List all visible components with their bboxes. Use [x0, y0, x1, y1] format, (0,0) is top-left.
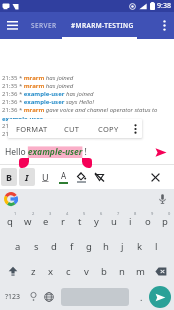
- staticText: v: [84, 265, 89, 278]
- button[interactable]: Send message: [151, 142, 171, 162]
- button[interactable]: r: [54, 209, 71, 234]
- staticText: U: [42, 171, 49, 183]
- staticText: l: [155, 240, 158, 253]
- staticText: w: [24, 215, 32, 228]
- button[interactable]: Bold: [1, 168, 17, 186]
- button[interactable]: COPY: [88, 119, 129, 138]
- button[interactable]: p: [156, 209, 173, 234]
- staticText: 21:36 * example-user has joined: [2, 90, 94, 98]
- staticText: s: [34, 240, 39, 253]
- staticText: z: [31, 265, 36, 278]
- button[interactable]: SERVER: [24, 12, 64, 39]
- button[interactable]: l: [148, 234, 165, 259]
- staticText: ?123: [5, 292, 21, 302]
- button[interactable]: j: [114, 234, 131, 259]
- button[interactable]: #MRARM-TESTING: [64, 12, 141, 39]
- staticText: 5: [83, 211, 86, 216]
- button[interactable]: Fill color: [73, 168, 89, 186]
- button[interactable]: t: [71, 209, 88, 234]
- staticText: e: [43, 215, 49, 228]
- staticText: o: [145, 215, 151, 228]
- button[interactable]: More options: [129, 119, 142, 138]
- staticText: Hello example-user !: [5, 146, 87, 158]
- button[interactable]: Underline: [37, 168, 53, 186]
- staticText: u: [111, 215, 117, 228]
- staticText: t: [78, 215, 82, 228]
- staticText: m: [136, 265, 145, 278]
- button[interactable]: Selection end handle: [82, 158, 92, 168]
- button[interactable]: b: [95, 259, 113, 283]
- staticText: c: [66, 265, 71, 278]
- staticText: f: [70, 240, 74, 253]
- button[interactable]: Selection start handle: [19, 158, 29, 168]
- button[interactable]: o: [139, 209, 156, 234]
- staticText: k: [137, 240, 143, 253]
- button[interactable]: s: [27, 234, 45, 259]
- button[interactable]: Change keyboard language: [41, 283, 57, 310]
- button[interactable]: h: [97, 234, 114, 259]
- button[interactable]: e: [37, 209, 54, 234]
- staticText: d: [51, 240, 57, 253]
- button[interactable]: f: [63, 234, 80, 259]
- button[interactable]: More options: [154, 12, 174, 39]
- button[interactable]: w: [19, 209, 37, 234]
- button[interactable]: CUT: [56, 119, 88, 138]
- staticText: a: [15, 240, 21, 253]
- button[interactable]: Emoji: [25, 283, 41, 310]
- staticText: SERVER: [31, 21, 57, 30]
- staticText: 21:36 * example-user says something: [2, 122, 108, 130]
- staticText: FORMAT: [16, 124, 48, 134]
- button[interactable]: m: [131, 259, 149, 283]
- button[interactable]: d: [45, 234, 63, 259]
- staticText: 9: [151, 211, 154, 216]
- button[interactable]: Clear formatting: [91, 168, 107, 186]
- staticText: A: [61, 170, 67, 181]
- button[interactable]: a: [9, 234, 27, 259]
- button[interactable]: v: [77, 259, 95, 283]
- staticText: 21:35 * mrarm has joined: [2, 82, 74, 90]
- staticText: COPY: [98, 124, 119, 134]
- button[interactable]: z: [25, 259, 42, 283]
- button[interactable]: FORMAT: [8, 119, 56, 138]
- button[interactable]: Voice input: [155, 192, 169, 206]
- button[interactable]: q: [1, 209, 19, 234]
- staticText: 0: [168, 211, 171, 216]
- staticText: 21:36 * example-user says Hello!: [2, 98, 95, 106]
- button[interactable]: u: [105, 209, 122, 234]
- staticText: g: [86, 240, 92, 253]
- staticText: .: [140, 291, 143, 303]
- staticText: 2: [32, 211, 35, 216]
- button[interactable]: y: [88, 209, 105, 234]
- button[interactable]: Backspace: [149, 259, 173, 283]
- button[interactable]: g: [80, 234, 97, 259]
- staticText: CUT: [64, 124, 80, 134]
- button[interactable]: k: [131, 234, 148, 259]
- staticText: h: [103, 240, 109, 253]
- button[interactable]: .: [133, 283, 149, 310]
- staticText: n: [119, 265, 125, 278]
- staticText: #MRARM-TESTING: [71, 21, 134, 30]
- staticText: q: [7, 215, 13, 228]
- button[interactable]: ?123: [1, 283, 25, 310]
- button[interactable]: Google search: [4, 192, 18, 206]
- button[interactable]: i: [122, 209, 139, 234]
- staticText: i: [129, 215, 132, 228]
- button[interactable]: Italic: [19, 168, 35, 186]
- button[interactable]: Shift: [1, 259, 25, 283]
- staticText: I: [25, 171, 29, 183]
- button[interactable]: Send: [149, 286, 171, 308]
- button[interactable]: c: [59, 259, 77, 283]
- button[interactable]: Close formatting bar: [144, 167, 166, 187]
- staticText: p: [162, 215, 168, 228]
- staticText: y: [94, 215, 99, 228]
- staticText: 3: [49, 211, 52, 216]
- staticText: 9:38: [157, 1, 171, 11]
- staticText: 21:36 * mrarm gave voice and channel ope…: [2, 106, 164, 122]
- button[interactable]: x: [42, 259, 59, 283]
- button[interactable]: Open navigation drawer: [0, 12, 24, 39]
- button[interactable]: n: [113, 259, 131, 283]
- staticText: 8: [134, 211, 137, 216]
- button[interactable]: Text color: [55, 168, 71, 186]
- staticText: x: [48, 265, 54, 278]
